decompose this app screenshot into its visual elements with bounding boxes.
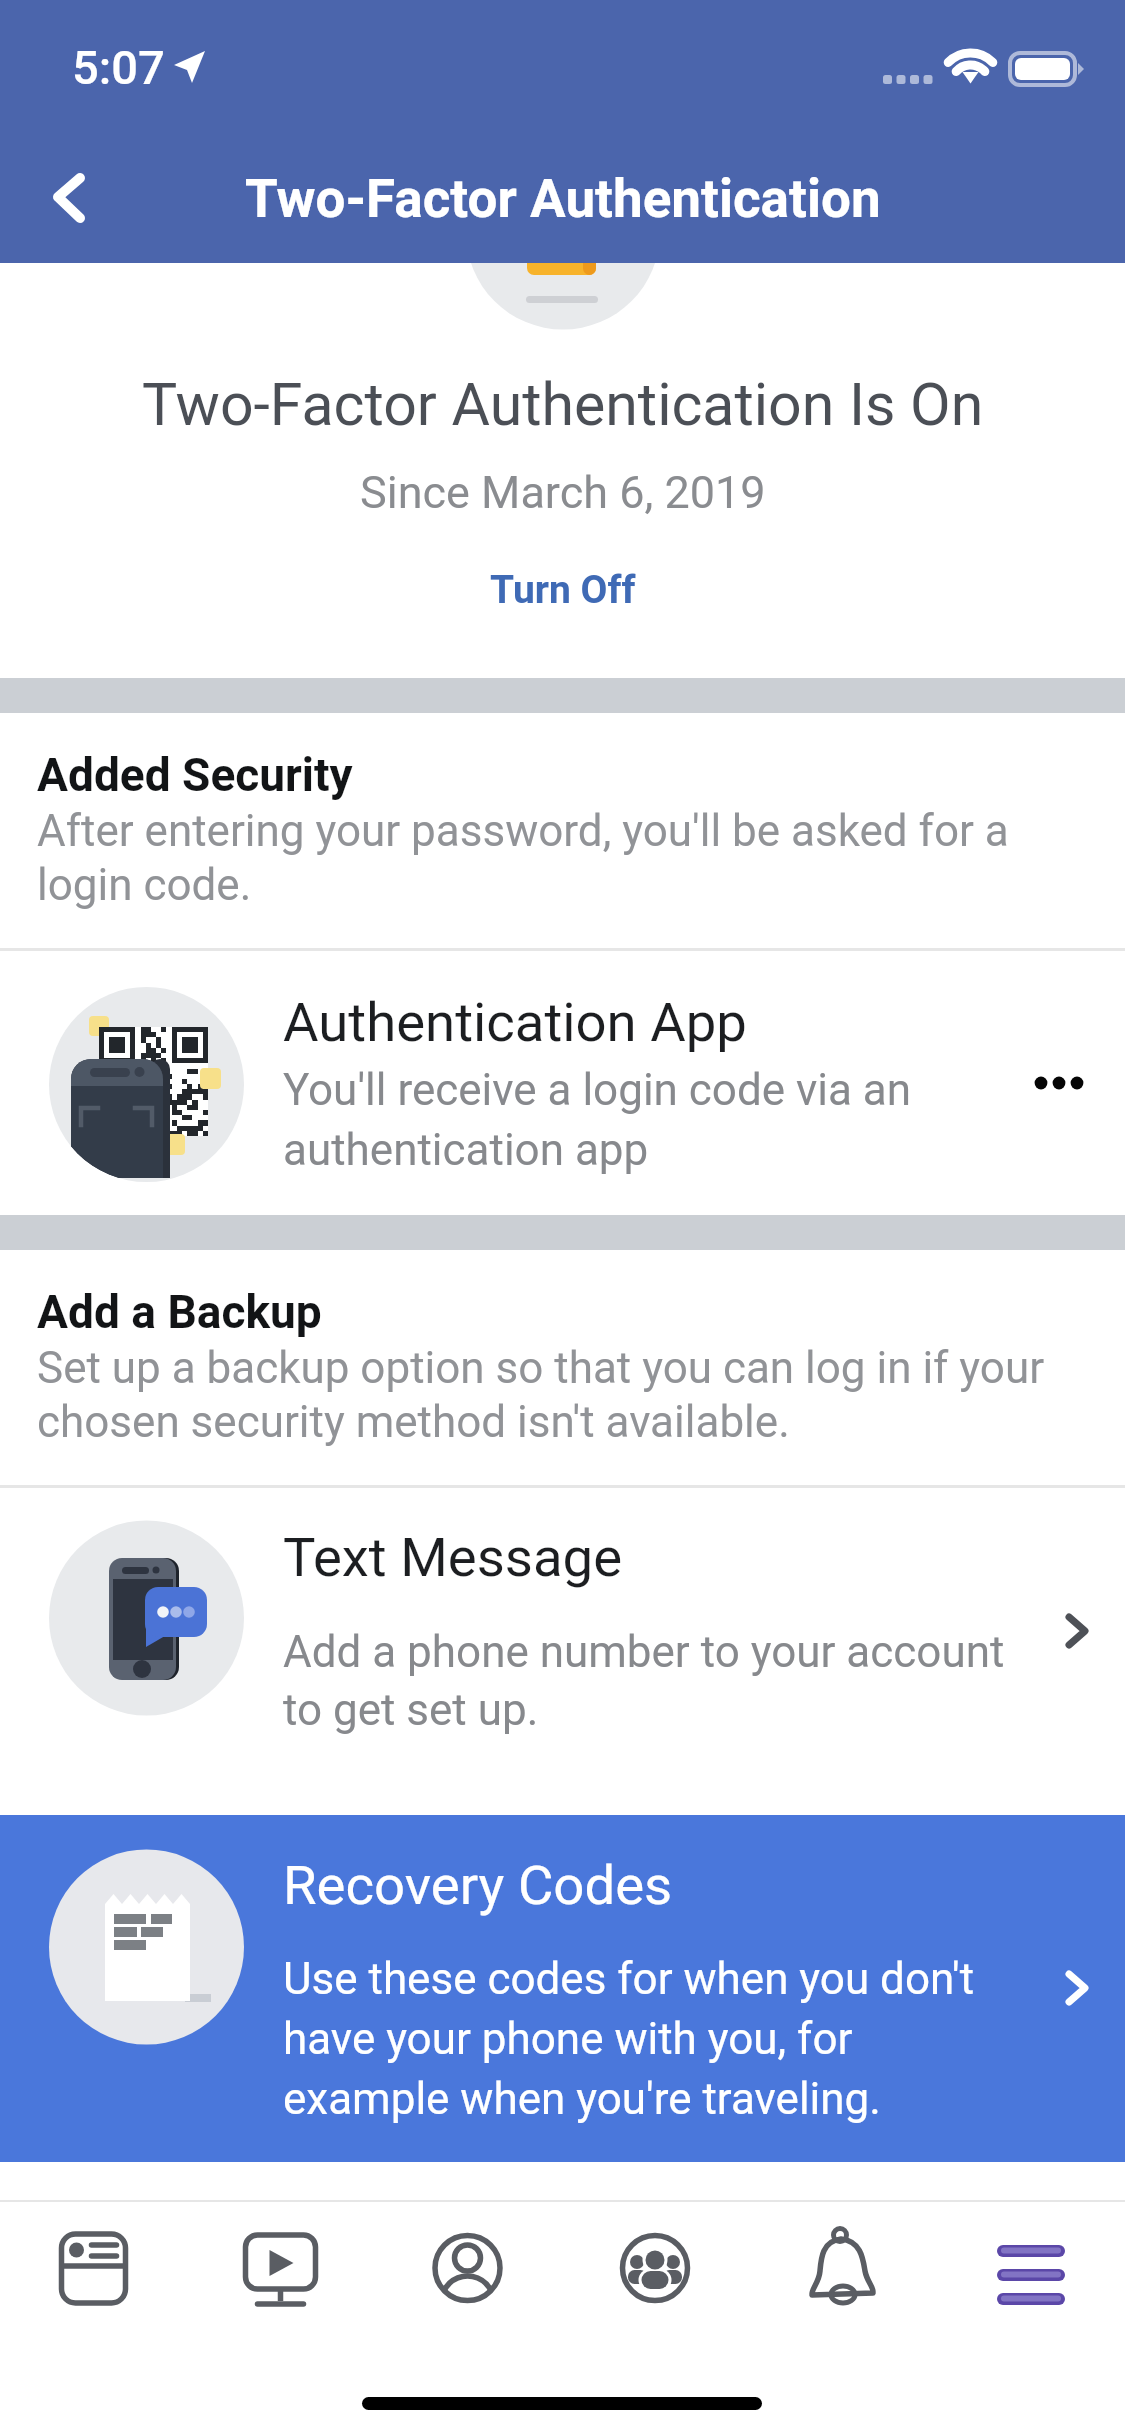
button[interactable]: Notifications xyxy=(749,2202,937,2332)
staticText: Two-Factor Authentication Is On xyxy=(142,370,984,439)
staticText: Text Message xyxy=(283,1525,623,1589)
staticText: Add a Backup xyxy=(37,1285,322,1339)
staticText: Use these codes for when you don't have … xyxy=(283,1953,1023,2124)
staticText: Recovery Codes xyxy=(283,1853,673,1917)
button[interactable]: More options xyxy=(1020,1043,1100,1123)
button[interactable]: Turn Off xyxy=(460,556,666,613)
staticText: Set up a backup option so that you can l… xyxy=(37,1342,1097,1447)
staticText: Added Security xyxy=(37,748,353,802)
button[interactable]: Watch xyxy=(187,2202,374,2332)
staticText: After entering your password, you'll be … xyxy=(37,805,1097,910)
button[interactable]: Profile xyxy=(374,2202,561,2332)
staticText: 5:07 xyxy=(72,40,165,95)
button[interactable]: Menu xyxy=(937,2202,1125,2332)
staticText: Two-Factor Authentication xyxy=(245,168,881,230)
button[interactable]: Text Message xyxy=(0,1488,1125,1815)
button[interactable]: Groups xyxy=(561,2202,749,2332)
button[interactable]: Back xyxy=(20,152,120,244)
button[interactable]: News Feed xyxy=(0,2202,187,2332)
staticText: You'll receive a login code via an authe… xyxy=(283,1064,943,1175)
button[interactable]: Authentication App xyxy=(0,951,1125,1215)
staticText: Authentication App xyxy=(283,990,747,1054)
staticText: Add a phone number to your account to ge… xyxy=(283,1626,1028,1736)
button[interactable]: Recovery Codes xyxy=(0,1815,1125,2162)
staticText: Turn Off xyxy=(490,567,636,613)
staticText: Since March 6, 2019 xyxy=(360,466,766,519)
